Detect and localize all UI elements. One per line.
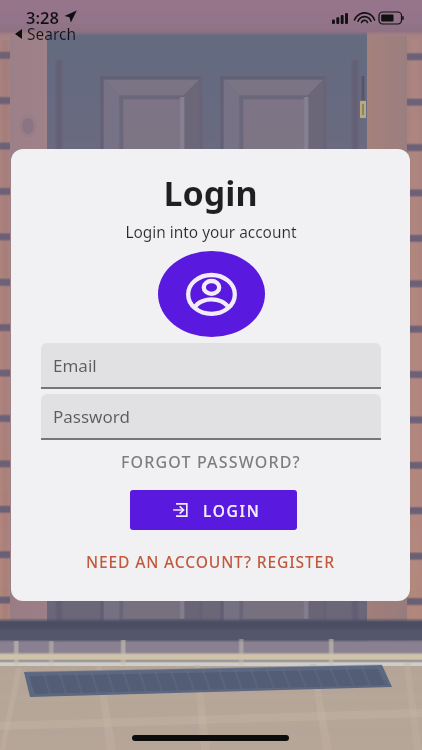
staticText: Password: [53, 405, 130, 428]
staticText: 3:28: [26, 6, 59, 28]
staticText: Email: [53, 354, 97, 377]
button[interactable]: FORGOT PASSWORD?: [11, 450, 410, 474]
button[interactable]: Password: [41, 394, 381, 440]
button[interactable]: LOGIN: [130, 490, 297, 530]
button[interactable]: Account avatar: [158, 251, 265, 337]
staticText: Login: [163, 170, 258, 216]
staticText: NEED AN ACCOUNT? REGISTER: [86, 551, 335, 572]
button[interactable]: NEED AN ACCOUNT? REGISTER: [11, 548, 410, 574]
staticText: Search: [27, 23, 77, 44]
staticText: LOGIN: [203, 500, 261, 521]
button[interactable]: Email: [41, 343, 381, 389]
staticText: Login into your account: [125, 222, 297, 243]
staticText: FORGOT PASSWORD?: [121, 451, 301, 473]
